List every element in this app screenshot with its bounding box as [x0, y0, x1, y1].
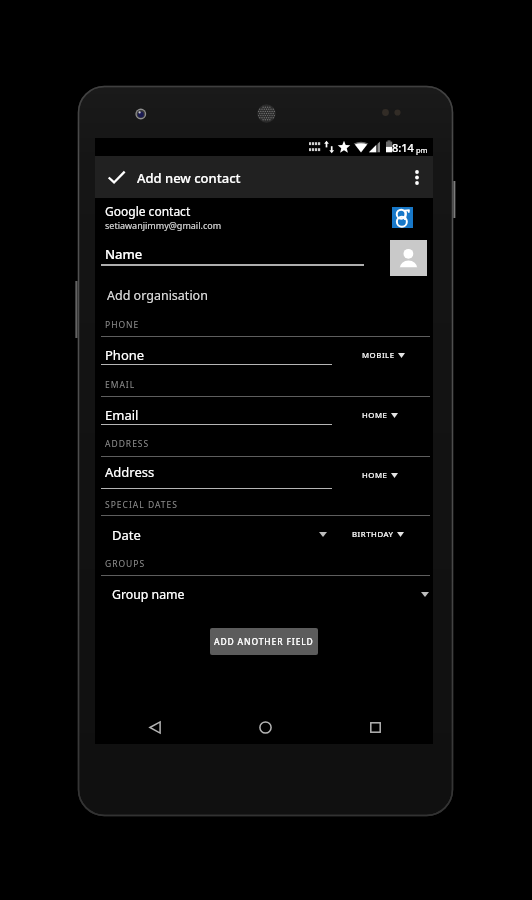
staticText: pm: [414, 145, 428, 155]
staticText: Group name: [112, 586, 185, 603]
staticText: MOBILE: [362, 350, 395, 361]
button[interactable]: Group name: [95, 582, 433, 606]
staticText: setiawanjimmy@gmail.com: [105, 219, 222, 231]
staticText: BIRTHDAY: [352, 529, 394, 540]
staticText: HOME: [362, 470, 388, 481]
button[interactable]: Save contact: [97, 156, 135, 198]
staticText: Address: [105, 463, 155, 481]
staticText: ADD ANOTHER FIELD: [214, 636, 314, 648]
button[interactable]: Add contact photo: [390, 240, 427, 276]
staticText: EMAIL: [105, 379, 136, 391]
button[interactable]: Back: [135, 707, 175, 747]
button[interactable]: BIRTHDAY: [352, 527, 412, 541]
staticText: Add new contact: [137, 169, 241, 187]
staticText: Email: [105, 406, 139, 424]
staticText: Date: [112, 526, 141, 544]
button[interactable]: HOME: [362, 408, 422, 422]
staticText: PHONE: [105, 319, 140, 331]
staticText: Add organisation: [107, 287, 208, 304]
staticText: 8:14: [392, 140, 414, 155]
staticText: Google contact: [105, 203, 191, 219]
button[interactable]: More options: [401, 156, 433, 198]
button[interactable]: Google account: [392, 207, 413, 228]
button[interactable]: Recent apps: [355, 707, 395, 747]
button[interactable]: ADD ANOTHER FIELD: [210, 628, 318, 655]
button[interactable]: Add organisation: [95, 285, 433, 307]
button[interactable]: Address: [95, 460, 345, 484]
staticText: SPECIAL DATES: [105, 499, 178, 511]
staticText: ADDRESS: [105, 438, 150, 450]
staticText: Name: [105, 245, 143, 263]
button[interactable]: Name: [95, 244, 363, 270]
staticText: HOME: [362, 410, 388, 421]
button[interactable]: Email: [95, 403, 345, 427]
button[interactable]: Date: [95, 522, 340, 546]
button[interactable]: Home: [245, 707, 285, 747]
staticText: GROUPS: [105, 558, 146, 570]
button[interactable]: HOME: [362, 468, 422, 482]
button[interactable]: Phone: [95, 343, 345, 367]
button[interactable]: MOBILE: [362, 348, 422, 362]
staticText: Phone: [105, 346, 145, 364]
